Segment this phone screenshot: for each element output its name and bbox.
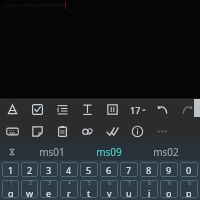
button[interactable]: Format painter xyxy=(0,99,25,120)
button[interactable]: Insert table xyxy=(100,99,125,120)
staticText: w xyxy=(26,187,34,198)
button[interactable]: 9 xyxy=(160,162,178,177)
staticText: 4 xyxy=(68,180,71,187)
staticText: 7 xyxy=(128,180,131,187)
button[interactable]: 2 xyxy=(21,162,38,177)
button[interactable]: 3 xyxy=(40,180,58,198)
staticText: o xyxy=(166,187,172,198)
button[interactable]: 8 xyxy=(140,162,158,177)
button[interactable]: 1 xyxy=(2,162,19,177)
staticText: e xyxy=(46,187,52,198)
staticText: 7 xyxy=(126,164,132,176)
button[interactable]: 4 xyxy=(60,162,78,177)
button[interactable]: Sticky note xyxy=(25,120,50,142)
staticText: 3 xyxy=(48,180,51,187)
button[interactable]: Spell check xyxy=(100,120,125,142)
button[interactable]: 8 xyxy=(140,180,158,198)
button[interactable]: 4 xyxy=(60,180,78,198)
button[interactable]: 2 xyxy=(21,180,38,198)
button[interactable]: 7 xyxy=(120,180,138,198)
button[interactable]: ms01 xyxy=(24,143,80,160)
staticText: p xyxy=(186,187,192,198)
button[interactable]: 6 xyxy=(100,180,118,198)
staticText: to be conducted from xyxy=(3,1,64,9)
staticText: 2 xyxy=(29,180,32,187)
staticText: 3 xyxy=(46,164,52,176)
staticText: 1 xyxy=(10,180,13,187)
button[interactable]: 0 xyxy=(180,180,198,198)
button[interactable]: 7 xyxy=(120,162,138,177)
button[interactable]: Clipboard xyxy=(50,120,75,142)
button[interactable]: Translate xyxy=(75,120,100,142)
button[interactable]: 1 xyxy=(2,180,19,198)
button[interactable]: 9 xyxy=(160,180,178,198)
staticText: r xyxy=(67,187,71,198)
staticText: q xyxy=(8,187,14,198)
button[interactable]: 17 xyxy=(125,99,150,120)
staticText: 6 xyxy=(106,164,112,176)
staticText: 9 xyxy=(166,164,172,176)
staticText: ms01 xyxy=(39,145,65,159)
staticText: 9 xyxy=(168,180,171,187)
button[interactable]: Redo xyxy=(175,99,200,120)
button[interactable]: Undo xyxy=(150,99,175,120)
button[interactable]: Info xyxy=(125,120,150,142)
staticText: 2 xyxy=(27,164,33,176)
staticText: 8 xyxy=(146,164,152,176)
button[interactable]: ms09 xyxy=(80,143,137,160)
button[interactable]: 6 xyxy=(100,162,118,177)
staticText: ms02 xyxy=(153,145,179,159)
button[interactable]: 5 xyxy=(80,162,98,177)
button[interactable]: More options xyxy=(150,120,175,142)
button[interactable]: Text style xyxy=(75,99,100,120)
staticText: 0 xyxy=(186,164,192,176)
button[interactable]: 5 xyxy=(80,180,98,198)
button[interactable]: Expand suggestions xyxy=(0,143,24,160)
staticText: 5 xyxy=(86,164,92,176)
staticText: 1 xyxy=(8,164,14,176)
staticText: u xyxy=(126,187,132,198)
staticText: i xyxy=(148,187,151,198)
staticText: and will be held in the main hall xyxy=(3,8,78,15)
button[interactable]: Checklist xyxy=(25,99,50,120)
button[interactable]: 3 xyxy=(40,162,58,177)
staticText: 6 xyxy=(108,180,111,187)
staticText: 8 xyxy=(148,180,151,187)
staticText: 17 xyxy=(130,104,141,116)
staticText: 4 xyxy=(66,164,72,176)
button[interactable]: Keyboard xyxy=(0,120,25,142)
button[interactable]: ms02 xyxy=(137,143,194,160)
staticText: t xyxy=(87,187,91,198)
staticText: ms09 xyxy=(96,145,122,159)
staticText: 5 xyxy=(88,180,91,187)
button[interactable]: Paragraph spacing xyxy=(50,99,75,120)
button[interactable]: 0 xyxy=(180,162,198,177)
staticText: y xyxy=(107,187,112,198)
staticText: 0 xyxy=(188,180,191,187)
